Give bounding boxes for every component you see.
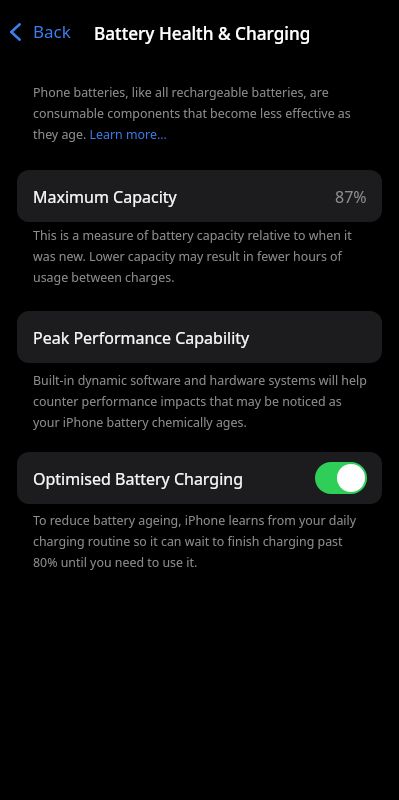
- staticText: Optimised Battery Charging: [33, 468, 244, 490]
- button[interactable]: Learn more: [86, 125, 168, 142]
- button[interactable]: Peak Performance Capability: [17, 311, 382, 363]
- staticText: 87%: [335, 186, 367, 208]
- staticText: Maximum Capacity: [33, 186, 177, 208]
- staticText: Phone batteries, like all rechargeable b…: [33, 84, 369, 143]
- staticText: This is a measure of battery capacity re…: [33, 227, 369, 286]
- button[interactable]: Maximum Capacity: [17, 170, 382, 222]
- button[interactable]: Optimised Battery Charging toggle: [315, 462, 367, 494]
- staticText: Built-in dynamic software and hardware s…: [33, 372, 369, 431]
- staticText: Back: [33, 20, 71, 43]
- button[interactable]: Back: [4, 14, 79, 49]
- staticText: Peak Performance Capability: [33, 327, 250, 349]
- staticText: Battery Health & Charging: [94, 22, 311, 45]
- staticText: To reduce battery ageing, iPhone learns …: [33, 512, 369, 571]
- button[interactable]: Optimised Battery Charging: [17, 452, 382, 504]
